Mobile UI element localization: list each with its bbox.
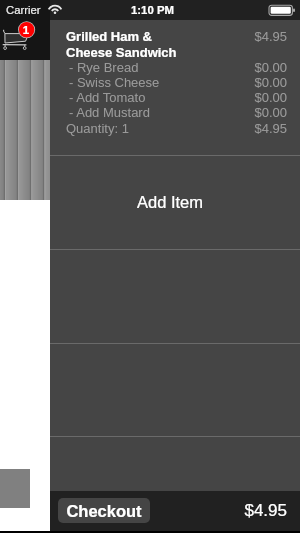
button[interactable] (50, 344, 300, 437)
staticText: $0.00 (185, 75, 287, 90)
staticText: Quantity: 1 (66, 121, 129, 136)
button[interactable]: Shopping cart, 1 item (0, 20, 40, 56)
staticText: $4.95 (185, 121, 287, 136)
button[interactable]: Add Item (50, 156, 300, 249)
staticText: $4.95 (185, 501, 287, 520)
button[interactable]: Grilled Ham & (50, 20, 300, 155)
staticText: $0.00 (185, 105, 287, 120)
staticText: Carrier (6, 4, 41, 17)
staticText: $0.00 (185, 90, 287, 105)
button[interactable]: Checkout (58, 498, 150, 523)
staticText: - Add Tomato (69, 90, 146, 105)
staticText: Grilled Ham & (66, 29, 152, 44)
staticText: Add Item (50, 193, 290, 211)
staticText: $4.95 (185, 29, 287, 44)
staticText: Checkout (58, 502, 150, 520)
staticText: - Swiss Cheese (69, 75, 160, 90)
staticText: $0.00 (185, 60, 287, 75)
staticText: - Add Mustard (69, 105, 150, 120)
staticText: - Rye Bread (69, 60, 139, 75)
staticText: 1:10 PM (127, 4, 178, 17)
staticText: Cheese Sandwich (66, 45, 177, 60)
staticText: 1 (19, 24, 33, 37)
